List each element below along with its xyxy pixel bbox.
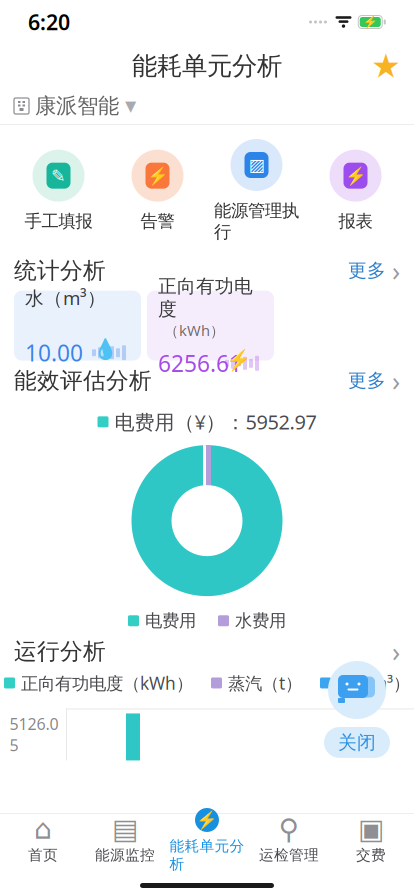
staticText: 电费用 xyxy=(145,610,196,631)
button[interactable]: ⚲ xyxy=(248,815,330,864)
staticText: ⚡ xyxy=(225,348,250,371)
staticText: 电费用（¥）：5952.97 xyxy=(114,409,316,435)
button[interactable]: ▤ xyxy=(84,815,166,864)
staticText: 告警 xyxy=(140,211,174,232)
staticText: 正向有功电度 xyxy=(158,275,253,321)
staticText: 能耗单元分析 xyxy=(169,837,244,873)
staticText: 5126.05 xyxy=(9,713,58,756)
staticText: › xyxy=(392,634,400,669)
staticText: 关闭 xyxy=(338,731,376,754)
staticText: 水费用 xyxy=(235,610,286,631)
button[interactable]: ⚡ xyxy=(108,150,207,232)
staticText: ▼ xyxy=(125,98,136,114)
button[interactable]: ⚡ xyxy=(166,815,248,864)
button[interactable]: ▨ xyxy=(207,139,306,243)
staticText: 蒸汽（t） xyxy=(228,671,302,694)
button[interactable]: ⌂ xyxy=(2,815,84,864)
staticText: 康派智能 xyxy=(35,93,119,119)
button[interactable]: 更多 xyxy=(348,247,400,294)
staticText: ▤ xyxy=(112,813,138,845)
staticText: 手工填报 xyxy=(24,211,92,232)
staticText: 运行分析 xyxy=(14,637,106,665)
staticText: ▨ xyxy=(248,155,264,175)
button[interactable]: 在线客服 xyxy=(328,661,386,719)
staticText: ▣ xyxy=(358,813,384,845)
staticText: ✎ xyxy=(51,166,66,185)
staticText: 能源监控 xyxy=(95,846,155,864)
staticText: ⚡ xyxy=(196,810,218,830)
staticText: 更多 xyxy=(348,259,386,282)
staticText: ★ xyxy=(371,47,401,85)
button[interactable]: 收藏 xyxy=(364,44,408,88)
staticText: 统计分析 xyxy=(14,257,106,284)
button[interactable]: 康派智能 xyxy=(0,88,414,124)
staticText: 能耗单元分析 xyxy=(132,50,282,81)
staticText: › xyxy=(392,253,400,288)
button[interactable]: 更多 xyxy=(348,357,400,404)
staticText: 6256.61 xyxy=(158,348,242,378)
staticText: ⚡ xyxy=(363,15,378,29)
button[interactable]: ▣ xyxy=(330,815,412,864)
staticText: 运检管理 xyxy=(259,846,319,864)
button[interactable]: 正向有功电度 xyxy=(147,291,274,361)
staticText: › xyxy=(392,363,400,398)
staticText: 报表 xyxy=(338,211,372,232)
staticText: 💧 xyxy=(92,338,117,361)
staticText: 水（m³） xyxy=(25,285,106,310)
staticText: 首页 xyxy=(28,846,58,864)
staticText: ⚲ xyxy=(278,813,299,845)
staticText: 能效评估分析 xyxy=(14,367,152,394)
staticText: ⌂ xyxy=(34,813,52,845)
button[interactable]: ⚡ xyxy=(306,150,405,232)
staticText: 更多 xyxy=(348,369,386,392)
staticText: （kWh） xyxy=(164,321,225,340)
staticText: 6:20 xyxy=(28,8,70,36)
staticText: 交费 xyxy=(356,846,386,864)
button[interactable]: 水（m³） xyxy=(14,291,141,361)
staticText: 正向有功电度（kWh） xyxy=(21,671,193,694)
staticText: 10.00 xyxy=(25,338,83,368)
staticText: ⚡ xyxy=(146,166,168,185)
button[interactable]: 关闭 xyxy=(324,727,390,758)
staticText: 水（m³） xyxy=(337,671,410,694)
button[interactable]: 更多 xyxy=(392,628,400,675)
staticText: ⚡ xyxy=(344,166,366,185)
staticText: 能源管理执行 xyxy=(214,200,299,243)
button[interactable]: ✎ xyxy=(9,150,108,232)
